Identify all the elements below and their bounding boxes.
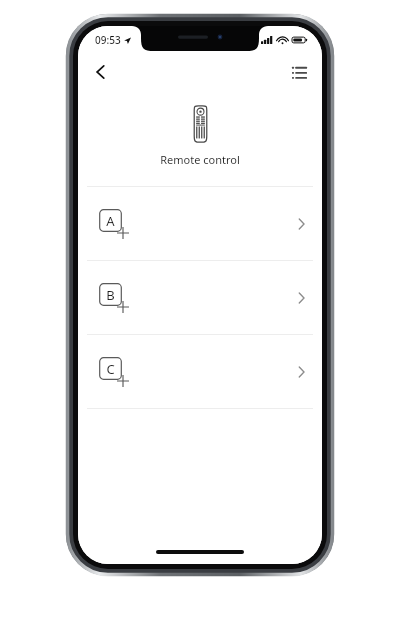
button[interactable]: C	[78, 335, 322, 408]
button[interactable]: Back	[84, 55, 118, 89]
staticText: B	[106, 286, 115, 304]
button[interactable]: A	[78, 187, 322, 260]
staticText: Remote control	[160, 152, 240, 167]
staticText: C	[106, 360, 115, 378]
staticText: 09:53	[95, 33, 121, 47]
staticText: A	[106, 212, 115, 230]
button[interactable]: Menu	[282, 55, 316, 89]
button[interactable]: B	[78, 261, 322, 334]
